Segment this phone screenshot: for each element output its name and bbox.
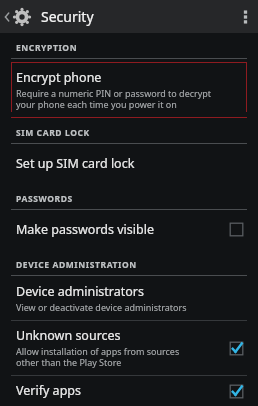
- button[interactable]: More options: [232, 0, 258, 33]
- button[interactable]: Make passwords visible: [0, 210, 258, 250]
- staticText: Set up SIM card lock: [16, 155, 135, 172]
- button[interactable]: Device administrators: [0, 276, 258, 320]
- staticText: Encrypt phone: [16, 69, 102, 86]
- staticText: Allow installation of apps from sources …: [16, 345, 180, 369]
- staticText: Verify apps: [16, 382, 81, 399]
- staticText: Unknown sources: [16, 327, 121, 344]
- button[interactable]: Encrypt phone: [11, 62, 247, 118]
- staticText: SIM CARD LOCK: [16, 127, 90, 139]
- button[interactable]: Verify apps: [0, 376, 258, 406]
- staticText: ENCRYPTION: [16, 42, 78, 54]
- staticText: Require a numeric PIN or password to dec…: [16, 87, 212, 111]
- button[interactable]: Set up SIM card lock: [0, 144, 258, 184]
- staticText: Security: [41, 7, 94, 26]
- staticText: View or deactivate device administrators: [16, 301, 187, 313]
- staticText: Make passwords visible: [16, 221, 154, 238]
- button[interactable]: Navigate up: [0, 3, 34, 31]
- button[interactable]: Unknown sources: [0, 321, 258, 375]
- staticText: Device administrators: [16, 283, 145, 300]
- staticText: PASSWORDS: [16, 193, 73, 205]
- staticText: DEVICE ADMINISTRATION: [16, 259, 137, 271]
